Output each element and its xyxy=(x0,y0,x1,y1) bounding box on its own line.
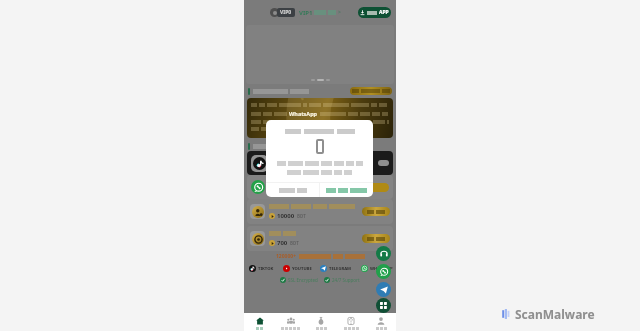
staticText: WhatsApp xyxy=(289,110,318,117)
button[interactable]: 700 xyxy=(247,226,393,251)
button[interactable] xyxy=(350,87,392,95)
staticText: TIKTOK xyxy=(258,266,274,272)
button[interactable] xyxy=(247,175,393,199)
button[interactable]: TELEGRAM xyxy=(320,265,352,272)
staticText: 700 xyxy=(277,239,288,247)
staticText: > xyxy=(338,9,341,16)
button[interactable]: YOUTUBE xyxy=(283,265,312,272)
button[interactable]: TIKTOK xyxy=(249,265,274,272)
button[interactable]: WhatsApp xyxy=(376,264,391,279)
staticText: SSL Encrypted xyxy=(288,277,318,283)
staticText: TELEGRAM xyxy=(329,266,352,272)
staticText: 120000+ xyxy=(276,253,297,260)
button[interactable] xyxy=(362,207,390,216)
staticText: YOUTUBE xyxy=(292,266,312,272)
button[interactable] xyxy=(266,183,319,197)
button[interactable]: Home xyxy=(244,313,275,331)
button[interactable]: WhatsApp xyxy=(247,98,393,138)
staticText: 10000 xyxy=(277,212,295,220)
button[interactable]: Support xyxy=(336,313,366,331)
button[interactable]: Profile xyxy=(366,313,396,331)
staticText: 24/7 Support xyxy=(332,277,360,283)
button[interactable]: APP xyxy=(358,7,391,18)
button[interactable]: Community xyxy=(275,313,306,331)
staticText: VIP0 xyxy=(280,9,292,16)
button[interactable]: Telegram xyxy=(376,282,391,297)
staticText: VIP1 xyxy=(299,9,313,17)
button[interactable]: 10000 xyxy=(247,199,393,224)
button[interactable] xyxy=(362,234,390,243)
button[interactable] xyxy=(247,151,393,175)
button[interactable] xyxy=(320,183,373,197)
staticText: APP xyxy=(379,9,389,16)
button[interactable]: VIP0 xyxy=(270,8,341,17)
button[interactable]: Rewards xyxy=(306,313,336,331)
staticText: BDT xyxy=(297,213,306,219)
button[interactable]: Support xyxy=(376,246,391,261)
staticText: ScanMalware xyxy=(515,306,595,322)
button[interactable]: More apps xyxy=(376,298,391,313)
staticText: WHATSAPP xyxy=(370,266,393,272)
staticText: BDT xyxy=(290,240,299,246)
button[interactable]: WHATSAPP xyxy=(361,265,393,272)
